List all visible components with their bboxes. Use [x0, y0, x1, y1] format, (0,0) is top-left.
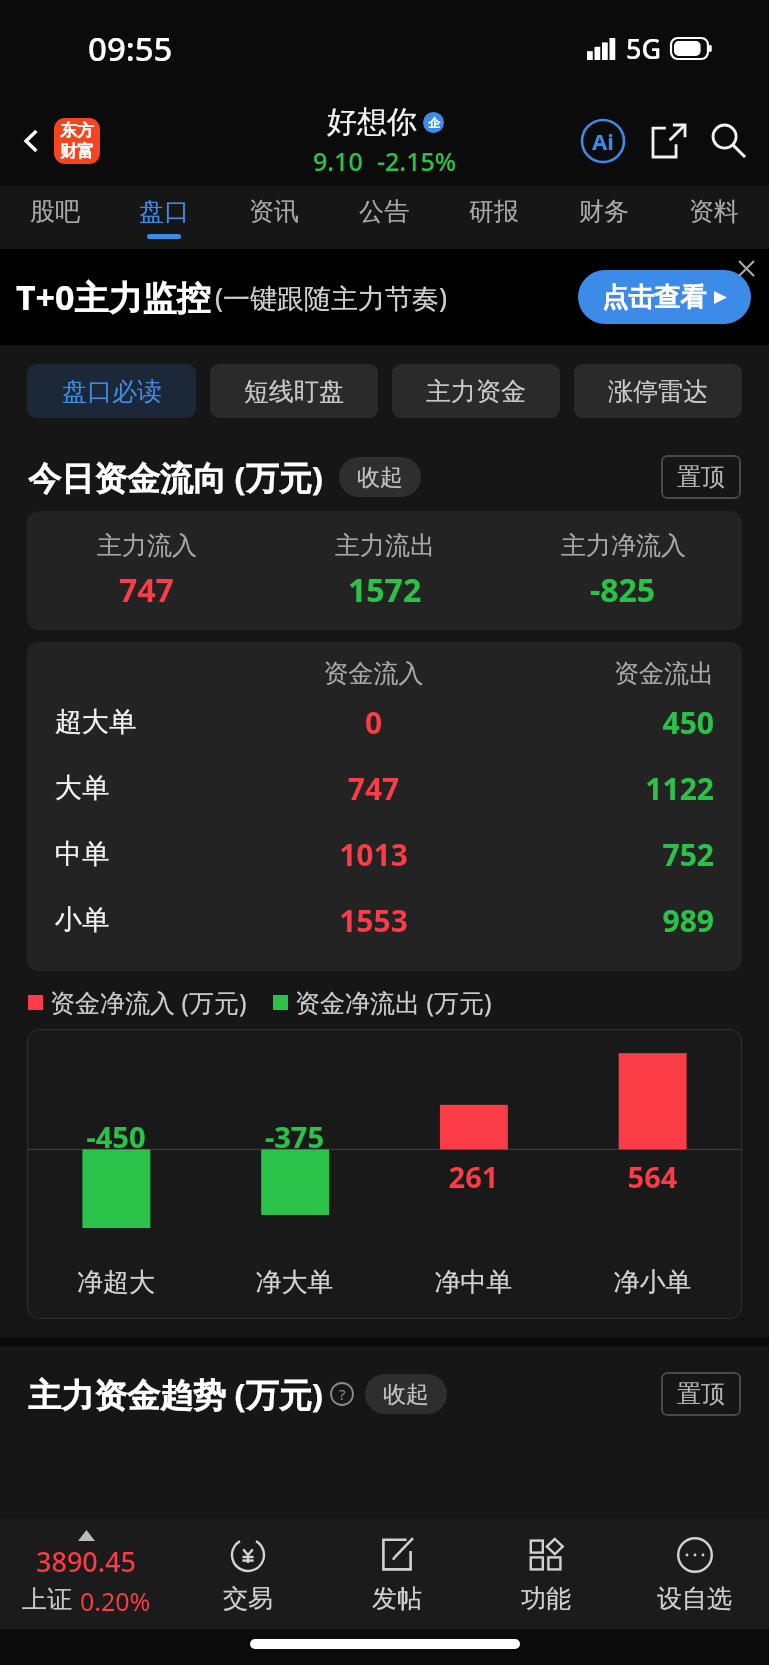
staticText: 收起: [357, 463, 403, 492]
staticText: 资讯: [249, 196, 299, 227]
staticText: 450: [487, 702, 714, 743]
staticText: 上证: [22, 1584, 72, 1615]
staticText: -450: [27, 1117, 205, 1156]
staticText: 净大单: [205, 1266, 384, 1299]
button[interactable]: 点击查看: [578, 270, 751, 324]
staticText: 564: [563, 1157, 742, 1196]
staticText: 主力资金: [426, 376, 526, 407]
staticText: 交易: [223, 1583, 273, 1614]
staticText: 置顶: [677, 1379, 725, 1409]
staticText: 0.20%: [80, 1584, 151, 1618]
button[interactable]: 置顶: [661, 1372, 741, 1416]
staticText: 747: [119, 568, 174, 612]
staticText: 资金净流入 (万元): [50, 985, 247, 1019]
button[interactable]: Search: [705, 117, 753, 165]
staticText: 主力净流入: [561, 530, 686, 561]
button[interactable]: 发帖: [322, 1519, 471, 1629]
button[interactable]: 资料: [659, 185, 769, 249]
staticText: 261: [384, 1157, 563, 1196]
staticText: 公告: [359, 196, 409, 227]
button[interactable]: Share: [645, 117, 693, 165]
staticText: 资金流入: [260, 658, 487, 689]
staticText: 主力资金趋势 (万元): [28, 1372, 323, 1417]
button[interactable]: Close banner: [731, 253, 761, 283]
button[interactable]: 盘口必读: [27, 364, 196, 418]
staticText: 752: [487, 834, 714, 875]
button[interactable]: 财务: [549, 185, 659, 249]
button[interactable]: 短线盯盘: [210, 364, 378, 418]
staticText: 1553: [260, 900, 487, 941]
staticText: 置顶: [677, 462, 725, 492]
staticText: 1572: [348, 568, 422, 612]
staticText: 财富: [60, 141, 94, 162]
staticText: 1013: [260, 834, 487, 875]
staticText: -375: [205, 1117, 384, 1156]
staticText: 5G: [626, 30, 662, 67]
staticText: 财务: [579, 196, 629, 227]
staticText: 资金流出: [487, 658, 714, 689]
staticText: 收起: [383, 1380, 429, 1409]
staticText: 东方: [60, 120, 94, 141]
button[interactable]: 超大单: [55, 689, 714, 755]
button[interactable]: 置顶: [661, 455, 741, 499]
button[interactable]: 收起: [339, 457, 421, 497]
button[interactable]: AI assistant: [577, 115, 629, 167]
staticText: 股吧: [30, 196, 80, 227]
staticText: -2.15%: [377, 144, 457, 178]
button[interactable]: 公告: [329, 185, 439, 249]
staticText: 设自选: [657, 1583, 732, 1614]
staticText: 盘口必读: [62, 376, 162, 407]
button[interactable]: 设自选: [620, 1519, 769, 1629]
staticText: (一键跟随主力节奏): [215, 279, 448, 316]
staticText: 大单: [55, 771, 260, 805]
staticText: 9.10: [313, 144, 363, 178]
staticText: 今日资金流向 (万元): [28, 455, 323, 500]
staticText: 点击查看: [602, 281, 706, 314]
staticText: 1122: [487, 768, 714, 809]
staticText: 3890.45: [36, 1543, 137, 1580]
staticText: Ai: [592, 126, 614, 156]
button[interactable]: Help: [329, 1381, 355, 1407]
button[interactable]: 3890.45: [0, 1530, 173, 1618]
button[interactable]: 研报: [439, 185, 549, 249]
button[interactable]: 涨停雷达: [574, 364, 742, 418]
staticText: 涨停雷达: [608, 376, 708, 407]
staticText: -825: [590, 568, 656, 612]
staticText: 净超大: [27, 1266, 205, 1299]
button[interactable]: 盘口: [109, 185, 219, 249]
button[interactable]: 资讯: [219, 185, 329, 249]
staticText: 短线盯盘: [244, 376, 344, 407]
staticText: ?: [339, 1384, 346, 1404]
staticText: 989: [487, 900, 714, 941]
button[interactable]: 大单: [55, 755, 714, 821]
button[interactable]: East Money: [54, 118, 100, 164]
staticText: 0: [260, 702, 487, 743]
staticText: 资料: [689, 196, 739, 227]
button[interactable]: 收起: [365, 1374, 447, 1414]
staticText: 小单: [55, 903, 260, 937]
staticText: 净中单: [384, 1266, 563, 1299]
button[interactable]: 主力资金: [392, 364, 560, 418]
staticText: 超大单: [55, 705, 260, 739]
button[interactable]: Back: [10, 119, 54, 163]
staticText: 发帖: [372, 1583, 422, 1614]
button[interactable]: 交易: [173, 1519, 322, 1629]
staticText: 747: [260, 768, 487, 809]
button[interactable]: 股吧: [0, 185, 109, 249]
staticText: 主力流入: [97, 530, 197, 561]
staticText: 主力流出: [335, 530, 435, 561]
staticText: 功能: [521, 1583, 571, 1614]
button[interactable]: 小单: [55, 887, 714, 953]
staticText: 资金净流出 (万元): [295, 985, 492, 1019]
staticText: 研报: [469, 196, 519, 227]
staticText: 净小单: [563, 1266, 742, 1299]
staticText: 好想你: [327, 103, 417, 141]
staticText: 09:55: [88, 26, 173, 71]
staticText: 盘口: [139, 196, 189, 227]
button[interactable]: 功能: [471, 1519, 620, 1629]
button[interactable]: 中单: [55, 821, 714, 887]
staticText: 中单: [55, 837, 260, 871]
staticText: T+0主力监控: [16, 274, 211, 320]
staticText: 企: [428, 115, 440, 130]
